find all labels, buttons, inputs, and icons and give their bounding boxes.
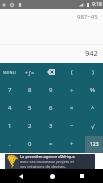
button[interactable]: MENU (0, 63, 20, 81)
button[interactable]: ) (82, 63, 103, 81)
button[interactable]: La première agence d'Afrique (5, 154, 95, 169)
staticText: 5 (28, 104, 32, 112)
staticText: √ (91, 123, 95, 130)
staticText: 6 (49, 104, 53, 112)
staticText: avec ses nouveaux projets et (20, 159, 74, 164)
staticText: 2 (28, 122, 32, 130)
staticText: La première agence d'Afrique (20, 154, 76, 159)
staticText: 0 (28, 140, 32, 148)
button[interactable]: 9 (40, 81, 61, 99)
staticText: 123 (90, 141, 99, 148)
staticText: 1 (8, 122, 12, 130)
staticText: MENU (3, 70, 17, 75)
staticText: ÷ (70, 86, 74, 94)
button[interactable]: % (82, 81, 103, 99)
staticText: 4 (8, 104, 12, 112)
button[interactable]: Recent apps (72, 169, 92, 183)
staticText: ) (92, 68, 94, 76)
staticText: + (70, 140, 74, 148)
button[interactable]: + (61, 135, 82, 153)
button[interactable]: Back (11, 169, 31, 183)
staticText: 3 (49, 122, 53, 130)
button[interactable]: 6 (40, 99, 61, 117)
button[interactable]: 123 (85, 136, 103, 153)
button[interactable]: × (61, 99, 82, 117)
staticText: 8 (28, 86, 32, 94)
button[interactable]: 4 (0, 99, 20, 117)
staticText: 9 (49, 86, 53, 94)
button[interactable]: = (40, 135, 61, 153)
button[interactable]: ( (61, 63, 82, 81)
staticText: − (70, 122, 74, 130)
staticText: % (90, 86, 95, 94)
staticText: 942 (85, 48, 98, 58)
button[interactable]: Backspace (40, 63, 61, 81)
button[interactable]: 2 (20, 117, 40, 135)
button[interactable]: Home (42, 169, 62, 183)
button[interactable]: 7 (0, 81, 20, 99)
button[interactable]: 0 (20, 135, 40, 153)
staticText: +∫= (25, 69, 35, 76)
staticText: ses créations de devises. (20, 164, 67, 169)
staticText: 987−45 (77, 13, 98, 21)
button[interactable]: 3 (40, 117, 61, 135)
staticText: . (9, 140, 11, 148)
staticText: = (49, 140, 53, 148)
button[interactable]: 5 (20, 99, 40, 117)
staticText: × (70, 104, 74, 112)
staticText: 9:18 (92, 1, 102, 8)
button[interactable]: √ (82, 117, 103, 135)
button[interactable]: ^ (82, 99, 103, 117)
button[interactable]: 1 (0, 117, 20, 135)
staticText: ( (71, 68, 73, 76)
button[interactable]: − (61, 117, 82, 135)
button[interactable]: ÷ (61, 81, 82, 99)
button[interactable]: . (0, 135, 20, 153)
button[interactable]: 8 (20, 81, 40, 99)
staticText: 7 (8, 86, 12, 94)
staticText: ^ (91, 104, 95, 112)
button[interactable]: +∫= (20, 63, 40, 81)
